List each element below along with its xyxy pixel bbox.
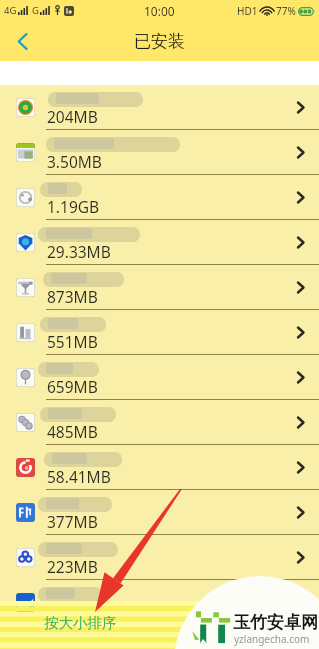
button[interactable]: 29.33MB: [0, 220, 319, 265]
button[interactable]: 551MB: [0, 310, 319, 355]
button[interactable]: 485MB: [0, 400, 319, 445]
button[interactable]: 204MB: [0, 85, 319, 130]
staticText: 1.19GB: [47, 196, 100, 217]
button[interactable]: 按大小排序: [44, 614, 117, 632]
staticText: 551MB: [47, 331, 98, 352]
button[interactable]: 58.41MB: [0, 445, 319, 490]
staticText: 玉竹安卓网: [233, 612, 318, 633]
staticText: 已安装: [134, 31, 185, 52]
button[interactable]: 223MB: [0, 535, 319, 580]
button[interactable]: [0, 580, 319, 625]
button[interactable]: 3.50MB: [0, 130, 319, 175]
staticText: yzlangecha.com: [234, 632, 310, 646]
button[interactable]: 873MB: [0, 265, 319, 310]
staticText: 659MB: [47, 376, 98, 397]
staticText: 77%: [276, 4, 296, 18]
staticText: 3.50MB: [47, 151, 102, 172]
staticText: 29.33MB: [47, 241, 111, 262]
staticText: 58.41MB: [47, 466, 111, 487]
staticText: 873MB: [47, 286, 98, 307]
button[interactable]: 377MB: [0, 490, 319, 535]
staticText: 204MB: [47, 106, 98, 127]
staticText: 223MB: [47, 556, 98, 577]
staticText: HD1: [237, 4, 258, 18]
button[interactable]: 1.19GB: [0, 175, 319, 220]
staticText: 485MB: [47, 421, 98, 442]
staticText: 按大小排序: [44, 614, 117, 632]
staticText: 377MB: [47, 511, 98, 532]
button[interactable]: Back: [6, 25, 38, 57]
staticText: 4G: [4, 4, 17, 17]
staticText: 10:00: [144, 3, 175, 19]
staticText: G: [32, 4, 39, 17]
button[interactable]: 659MB: [0, 355, 319, 400]
